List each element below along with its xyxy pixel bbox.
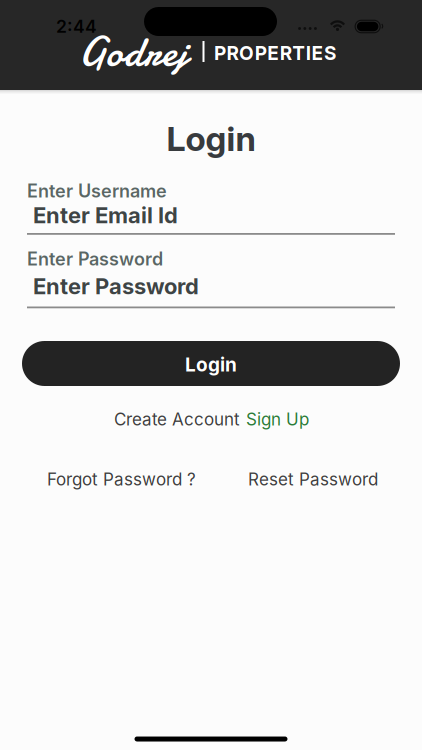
staticText: Sign Up (246, 409, 309, 430)
staticText: Enter Username (27, 180, 167, 202)
staticText: Forgot Password ? (47, 469, 196, 490)
staticText: Create Account (114, 409, 240, 430)
staticText: Enter Password (33, 273, 199, 300)
staticText: PROPERTIES (214, 41, 336, 64)
staticText: Reset Password (248, 469, 378, 490)
staticText: Godrej (78, 22, 187, 81)
staticText: Enter Email Id (33, 202, 178, 229)
staticText: Login (166, 118, 255, 159)
staticText: Login (185, 353, 237, 376)
staticText: 2:44 (56, 16, 97, 37)
staticText: Enter Password (27, 248, 163, 270)
